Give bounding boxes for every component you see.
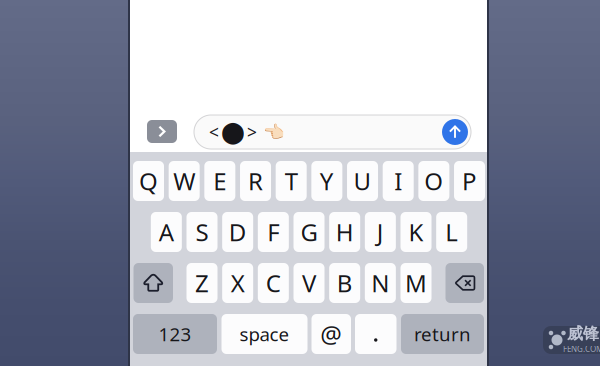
button[interactable]: J: [365, 212, 396, 252]
staticText: S: [195, 216, 208, 248]
staticText: 👈🏻: [263, 122, 285, 142]
button[interactable]: Y: [311, 161, 342, 201]
staticText: F: [267, 216, 279, 248]
staticText: L: [445, 216, 458, 248]
staticText: M: [405, 267, 427, 299]
staticText: ⬤: [221, 120, 245, 144]
staticText: space: [239, 322, 289, 346]
button[interactable]: L: [436, 212, 467, 252]
button[interactable]: Delete: [445, 263, 484, 303]
staticText: E: [213, 165, 226, 197]
staticText: K: [408, 216, 423, 248]
staticText: 威锋: [567, 324, 599, 344]
button[interactable]: F: [258, 212, 289, 252]
button[interactable]: T: [276, 161, 307, 201]
button[interactable]: space: [221, 314, 307, 354]
button[interactable]: W: [169, 161, 200, 201]
button[interactable]: Q: [133, 161, 164, 201]
button[interactable]: Z: [186, 263, 217, 303]
staticText: V: [302, 267, 316, 299]
staticText: C: [266, 267, 281, 299]
staticText: B: [337, 267, 353, 299]
staticText: return: [414, 322, 471, 346]
button[interactable]: K: [400, 212, 431, 252]
button[interactable]: O: [418, 161, 449, 201]
button[interactable]: M: [400, 263, 431, 303]
button[interactable]: A: [151, 212, 182, 252]
staticText: T: [285, 165, 298, 197]
staticText: <: [209, 120, 219, 143]
staticText: A: [159, 216, 174, 248]
button[interactable]: U: [347, 161, 378, 201]
staticText: FENG.COM: [563, 343, 600, 354]
button[interactable]: H: [329, 212, 360, 252]
button[interactable]: @: [311, 314, 351, 354]
button[interactable]: D: [222, 212, 253, 252]
button[interactable]: Send: [442, 119, 468, 145]
staticText: N: [371, 267, 389, 299]
button[interactable]: I: [383, 161, 414, 201]
staticText: P: [462, 165, 477, 197]
staticText: 123: [158, 322, 191, 346]
staticText: X: [231, 267, 245, 299]
button[interactable]: X: [222, 263, 253, 303]
button[interactable]: Shift: [133, 263, 173, 303]
button[interactable]: 123: [133, 314, 217, 354]
staticText: G: [300, 216, 317, 248]
staticText: D: [229, 216, 247, 248]
staticText: J: [377, 216, 384, 248]
staticText: @: [320, 318, 342, 350]
button[interactable]: return: [401, 314, 484, 354]
button[interactable]: E: [204, 161, 235, 201]
staticText: U: [353, 165, 371, 197]
staticText: Y: [320, 165, 334, 197]
staticText: I: [394, 165, 402, 197]
button[interactable]: P: [454, 161, 485, 201]
button[interactable]: R: [240, 161, 271, 201]
staticText: W: [173, 165, 195, 197]
staticText: Z: [195, 267, 209, 299]
button[interactable]: G: [293, 212, 324, 252]
staticText: >: [247, 120, 257, 143]
button[interactable]: .: [355, 314, 396, 354]
button[interactable]: V: [293, 263, 324, 303]
button[interactable]: S: [186, 212, 217, 252]
button[interactable]: C: [258, 263, 289, 303]
button[interactable]: Message: [194, 115, 471, 149]
staticText: H: [336, 216, 354, 248]
staticText: Q: [139, 165, 158, 197]
button[interactable]: N: [365, 263, 396, 303]
button[interactable]: Show more apps: [147, 120, 177, 143]
staticText: O: [424, 165, 443, 197]
staticText: R: [248, 165, 263, 197]
button[interactable]: B: [329, 263, 360, 303]
